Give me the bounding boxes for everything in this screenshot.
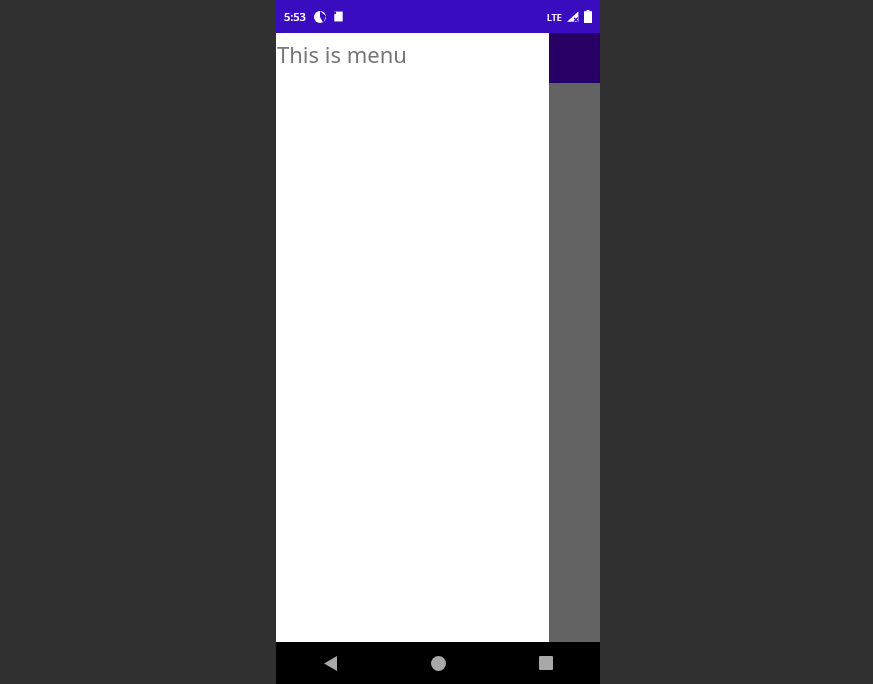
button[interactable]: Recent apps (492, 642, 600, 684)
staticText: LTE (547, 11, 562, 23)
staticText: This is menu (277, 39, 407, 69)
button[interactable]: Back (276, 642, 384, 684)
button[interactable]: Home (384, 642, 492, 684)
staticText: 5:53 (284, 9, 306, 24)
button[interactable]: This is menu (276, 33, 549, 642)
button[interactable] (276, 83, 600, 642)
